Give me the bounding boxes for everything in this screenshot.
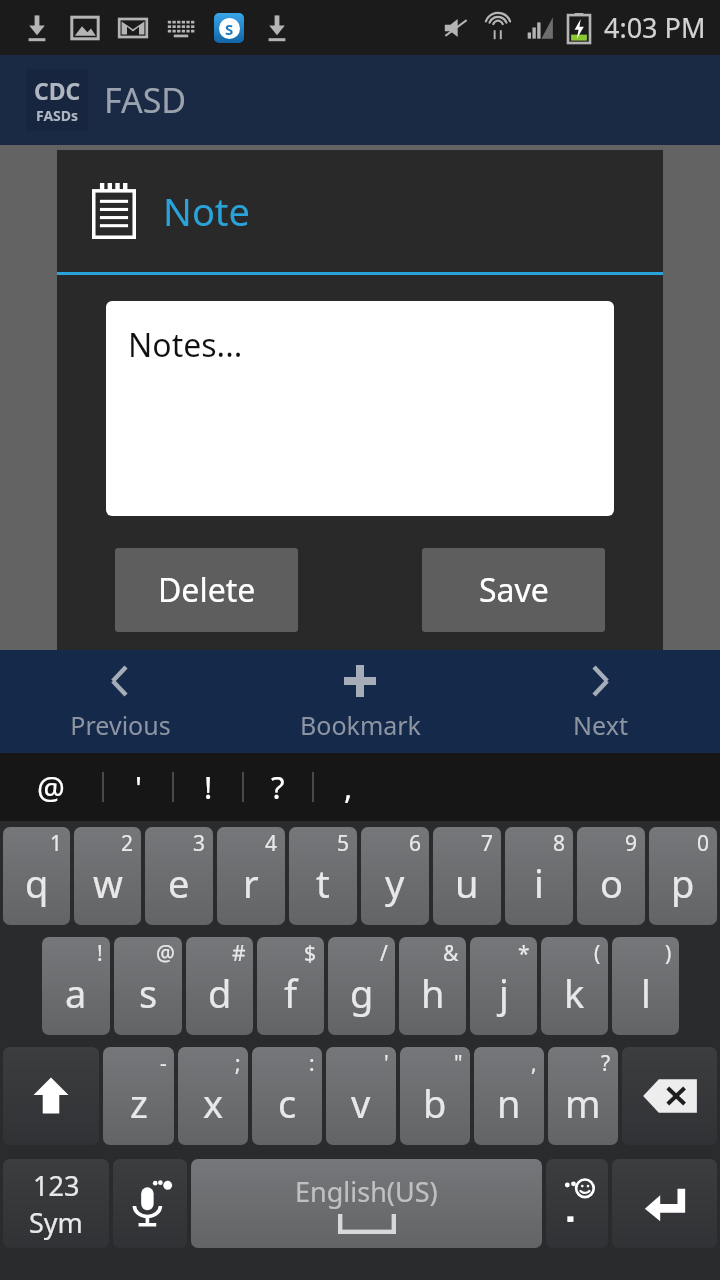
staticText: * — [518, 939, 530, 968]
staticText: S — [225, 19, 234, 39]
staticText: x — [203, 1077, 224, 1129]
staticText: f — [284, 967, 298, 1019]
staticText: k — [564, 967, 585, 1019]
staticText: z — [130, 1077, 148, 1129]
button[interactable]: " — [400, 1047, 470, 1145]
button[interactable]: ? — [548, 1047, 618, 1145]
button[interactable]: 4 — [217, 827, 285, 925]
staticText: 4 — [265, 829, 278, 858]
button[interactable]: ' — [326, 1047, 396, 1145]
button[interactable]: , — [474, 1047, 544, 1145]
staticText: m — [565, 1077, 601, 1129]
button[interactable]: & — [399, 937, 466, 1035]
staticText: ; — [235, 1049, 241, 1078]
staticText: 4:03 PM — [604, 9, 706, 46]
button[interactable]: Voice input — [113, 1159, 187, 1248]
staticText: n — [497, 1077, 521, 1129]
staticText: e — [168, 857, 190, 909]
staticText: FASD — [104, 77, 187, 123]
button[interactable]: Save — [422, 548, 605, 632]
staticText: v — [351, 1077, 371, 1129]
staticText: FASDs — [36, 106, 79, 125]
button[interactable]: 8 — [505, 827, 573, 925]
staticText: 2 — [121, 829, 134, 858]
button[interactable]: # — [186, 937, 253, 1035]
staticText: @ — [37, 766, 65, 808]
staticText: 123 — [33, 1167, 80, 1204]
staticText: CDC — [34, 75, 81, 106]
button[interactable]: ; — [178, 1047, 248, 1145]
staticText: 5 — [337, 829, 350, 858]
staticText: : — [309, 1049, 315, 1078]
button[interactable]: Bookmark — [240, 650, 480, 753]
staticText: ' — [135, 766, 142, 808]
button[interactable]: Previous — [0, 650, 240, 753]
button[interactable]: Shift — [3, 1047, 99, 1145]
staticText: ? — [271, 766, 285, 808]
button[interactable]: ! — [174, 753, 242, 821]
staticText: w — [93, 857, 123, 909]
button[interactable]: 7 — [433, 827, 501, 925]
button[interactable]: Space — [191, 1159, 542, 1248]
button[interactable]: ( — [541, 937, 608, 1035]
staticText: ? — [601, 1049, 611, 1078]
staticText: 8 — [553, 829, 566, 858]
staticText: r — [243, 857, 259, 909]
staticText: l — [641, 967, 651, 1019]
button[interactable]: ? — [244, 753, 312, 821]
button[interactable]: ! — [42, 937, 110, 1035]
staticText: / — [380, 939, 388, 968]
button[interactable]: 3 — [145, 827, 213, 925]
button[interactable]: @ — [114, 937, 182, 1035]
button[interactable]: ) — [612, 937, 679, 1035]
staticText: d — [208, 967, 232, 1019]
button[interactable]: Emoji — [546, 1159, 608, 1248]
staticText: 9 — [625, 829, 638, 858]
staticText: y — [385, 857, 405, 909]
button[interactable]: Notes... — [106, 301, 614, 516]
button[interactable]: 2 — [74, 827, 141, 925]
staticText: Save — [479, 568, 549, 612]
staticText: Sym — [29, 1204, 83, 1241]
button[interactable]: $ — [257, 937, 324, 1035]
button[interactable]: 1 — [3, 827, 70, 925]
staticText: , — [531, 1049, 537, 1078]
staticText: # — [232, 939, 246, 968]
button[interactable]: 6 — [361, 827, 429, 925]
staticText: Note — [163, 185, 251, 237]
staticText: p — [671, 857, 695, 909]
staticText: o — [600, 857, 623, 909]
staticText: ! — [97, 939, 103, 968]
staticText: j — [499, 967, 509, 1019]
staticText: s — [139, 967, 158, 1019]
staticText: t — [316, 857, 330, 909]
staticText: 6 — [409, 829, 422, 858]
staticText: i — [534, 857, 544, 909]
staticText: 7 — [481, 829, 494, 858]
button[interactable]: Next — [480, 650, 720, 753]
button[interactable]: Delete — [115, 548, 298, 632]
staticText: Previous — [70, 708, 171, 742]
button[interactable]: : — [252, 1047, 322, 1145]
button[interactable]: Backspace — [622, 1047, 717, 1145]
staticText: ' — [384, 1049, 389, 1078]
button[interactable]: Symbols — [3, 1159, 109, 1248]
staticText: h — [421, 967, 445, 1019]
button[interactable]: , — [314, 753, 382, 821]
staticText: $ — [304, 939, 317, 968]
button[interactable]: 0 — [649, 827, 717, 925]
staticText: a — [65, 967, 87, 1019]
staticText: English(US) — [295, 1173, 438, 1210]
staticText: ) — [665, 939, 672, 968]
button[interactable]: 5 — [289, 827, 357, 925]
button[interactable]: @ — [0, 753, 102, 821]
button[interactable]: * — [470, 937, 537, 1035]
staticText: Bookmark — [300, 708, 421, 742]
staticText: " — [454, 1049, 463, 1078]
button[interactable]: ' — [104, 753, 172, 821]
button[interactable]: - — [103, 1047, 174, 1145]
staticText: g — [350, 967, 374, 1019]
button[interactable]: 9 — [577, 827, 645, 925]
button[interactable]: / — [328, 937, 395, 1035]
button[interactable]: Enter — [612, 1159, 717, 1248]
